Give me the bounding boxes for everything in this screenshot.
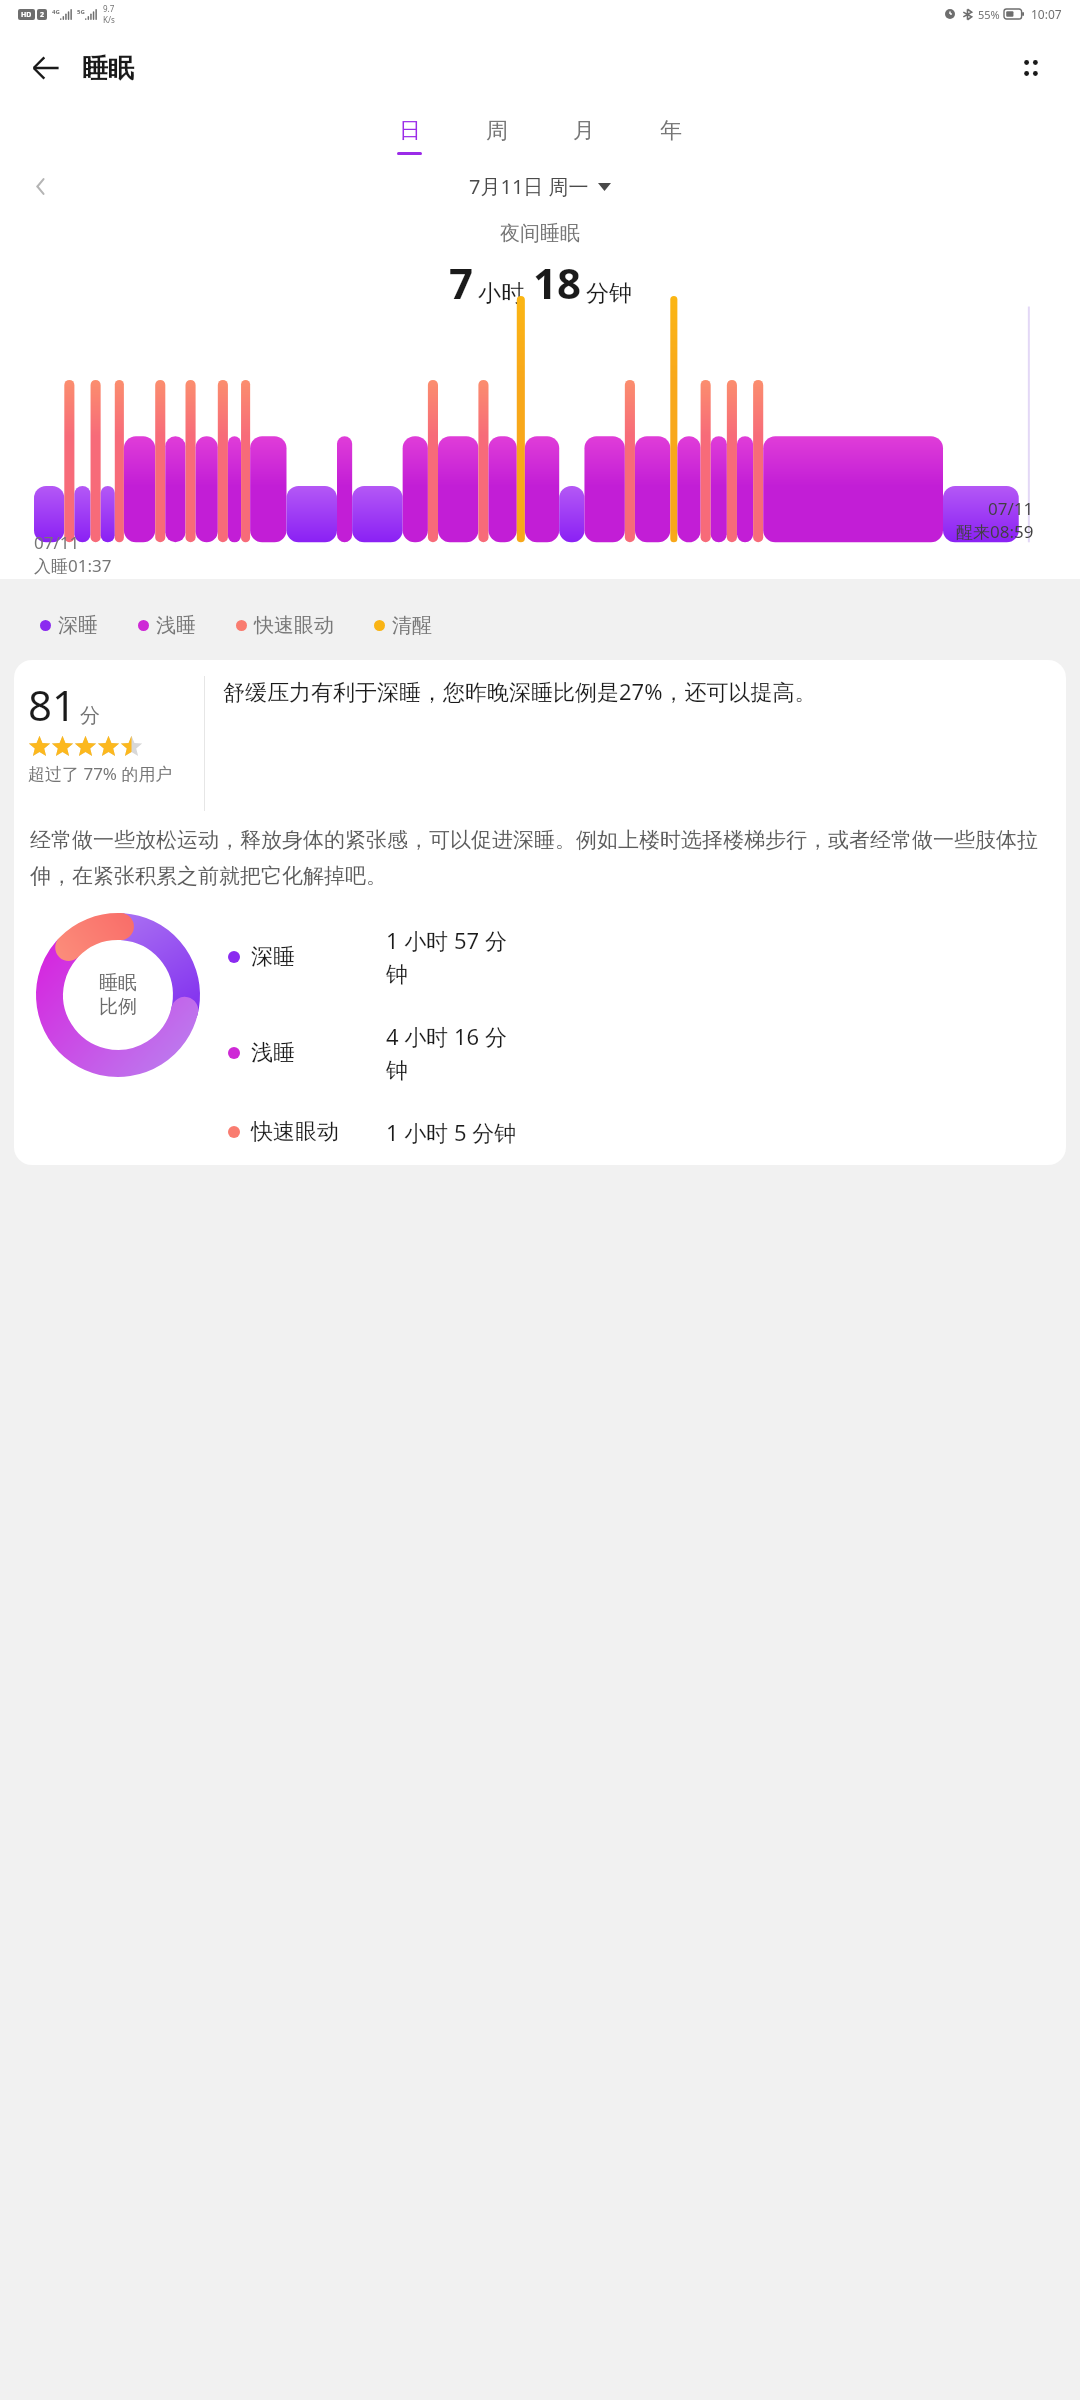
staticText: 81 [28, 676, 77, 733]
button[interactable]: More options [1008, 45, 1054, 91]
staticText: 分 [80, 703, 100, 728]
staticText: 周 [486, 117, 508, 145]
staticText: 5G [77, 8, 85, 16]
staticText: 分钟 [586, 279, 632, 308]
staticText: 快速眼动 [254, 613, 334, 638]
staticText: 浅睡 [251, 1039, 386, 1067]
staticText: 7月11日 周一 [469, 173, 589, 200]
staticText: 浅睡 [156, 613, 196, 638]
staticText: 清醒 [392, 613, 432, 638]
staticText: K/s [103, 14, 115, 25]
staticText: 1 小时 5 分钟 [386, 1117, 517, 1147]
button[interactable]: 深睡 [228, 925, 1052, 989]
button[interactable]: Previous day [20, 165, 62, 207]
staticText: 9.7 [103, 3, 115, 14]
button[interactable]: 7月11日 周一 [469, 173, 611, 200]
staticText: 4G [52, 8, 60, 16]
staticText: 10:07 [1031, 6, 1062, 22]
button[interactable]: 快速眼动 [236, 613, 334, 638]
button[interactable]: 快速眼动 [228, 1117, 1052, 1147]
staticText: 1 小时 57 分 钟 [386, 925, 507, 989]
staticText: 小时 [478, 279, 524, 308]
staticText: 2 [40, 10, 45, 20]
staticText: 月 [573, 117, 595, 145]
button[interactable]: Back [22, 44, 70, 92]
button[interactable]: 深睡 [40, 613, 98, 638]
staticText: 55% [978, 7, 1000, 22]
staticText: 快速眼动 [251, 1118, 386, 1146]
staticText: 7 [449, 254, 474, 311]
button[interactable]: 浅睡 [138, 613, 196, 638]
staticText: 年 [660, 117, 682, 145]
staticText: 比例 [99, 995, 137, 1019]
button[interactable]: 周 [453, 113, 540, 159]
staticText: 睡眠 [82, 52, 134, 85]
staticText: 日 [399, 117, 421, 145]
button[interactable]: 日 [366, 113, 453, 159]
staticText: 深睡 [58, 613, 98, 638]
staticText: 夜间睡眠 [500, 221, 580, 246]
staticText: 舒缓压力有利于深睡，您昨晚深睡比例是27%，还可以提高。 [223, 676, 817, 706]
staticText: 深睡 [251, 943, 386, 971]
staticText: 经常做一些放松运动，释放身体的紧张感，可以促进深睡。例如上楼时选择楼梯步行，或者… [30, 827, 1046, 889]
staticText: 4 小时 16 分 钟 [386, 1021, 507, 1085]
staticText: 入睡01:37 [34, 554, 112, 577]
button[interactable]: 浅睡 [228, 1021, 1052, 1085]
button[interactable]: 月 [540, 113, 627, 159]
staticText: 醒来08:59 [956, 520, 1034, 543]
staticText: 18 [533, 254, 582, 311]
staticText: HD [21, 10, 32, 20]
button[interactable]: 年 [627, 113, 714, 159]
staticText: 睡眠 [99, 971, 137, 995]
button[interactable]: 清醒 [374, 613, 432, 638]
staticText: 07/11 [34, 531, 80, 554]
staticText: 07/11 [988, 497, 1034, 520]
staticText: 超过了 77% 的用户 [28, 762, 173, 785]
